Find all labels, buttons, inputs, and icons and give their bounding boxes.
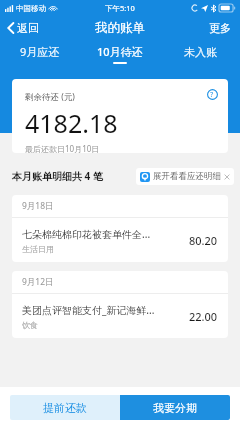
staticText: 生活日用 — [22, 244, 54, 254]
staticText: 本月账单明细共 4 笔 — [12, 169, 103, 183]
staticText: 9月12日 — [22, 276, 54, 288]
button[interactable]: 9月应还 — [0, 40, 80, 68]
staticText: 最后还款日10月10日 — [25, 143, 100, 153]
button[interactable]: 帮助 — [204, 86, 220, 102]
staticText: 剩余待还 (元) — [25, 91, 75, 103]
staticText: 提前还款 — [43, 401, 87, 415]
button[interactable]: 剩余待还 (元) — [12, 79, 228, 153]
button[interactable]: 返回 — [0, 18, 47, 38]
staticText: 美团点评智能支付_新记海鲜... — [22, 303, 155, 317]
button[interactable]: 10月待还 — [80, 40, 160, 68]
button[interactable]: 更多 — [200, 17, 240, 39]
staticText: 22.00 — [189, 309, 218, 324]
staticText: 返回 — [17, 21, 39, 35]
button[interactable]: 我要分期 — [120, 395, 230, 420]
staticText: 9月应还 — [20, 44, 60, 59]
staticText: 中国移动 — [16, 4, 46, 13]
button[interactable]: 提前还款 — [10, 395, 120, 420]
staticText: ? — [210, 89, 214, 99]
staticText: 我要分期 — [153, 401, 197, 415]
staticText: 10月待还 — [97, 44, 143, 59]
staticText: 未入账 — [184, 45, 217, 59]
button[interactable]: 9月18日 — [12, 195, 228, 262]
button[interactable]: 9月12日 — [12, 271, 228, 338]
staticText: 80.20 — [189, 233, 218, 248]
staticText: 9月18日 — [22, 200, 54, 212]
button[interactable]: 未入账 — [160, 40, 240, 68]
staticText: 4182.18 — [25, 106, 118, 140]
staticText: 展开看看应还明细 — [153, 171, 221, 182]
staticText: 下午5:10 — [105, 3, 135, 13]
staticText: 饮食 — [22, 320, 38, 330]
staticText: 七朵棉纯棉印花被套单件全... — [22, 227, 151, 241]
staticText: 我的账单 — [95, 20, 145, 36]
button[interactable]: 展开看看应还明细 — [136, 168, 234, 185]
